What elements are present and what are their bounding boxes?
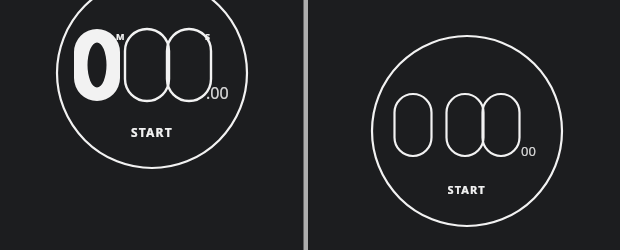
button[interactable]: Start stopwatch (57, 0, 247, 168)
button[interactable]: Start stopwatch, ambient (372, 36, 562, 226)
